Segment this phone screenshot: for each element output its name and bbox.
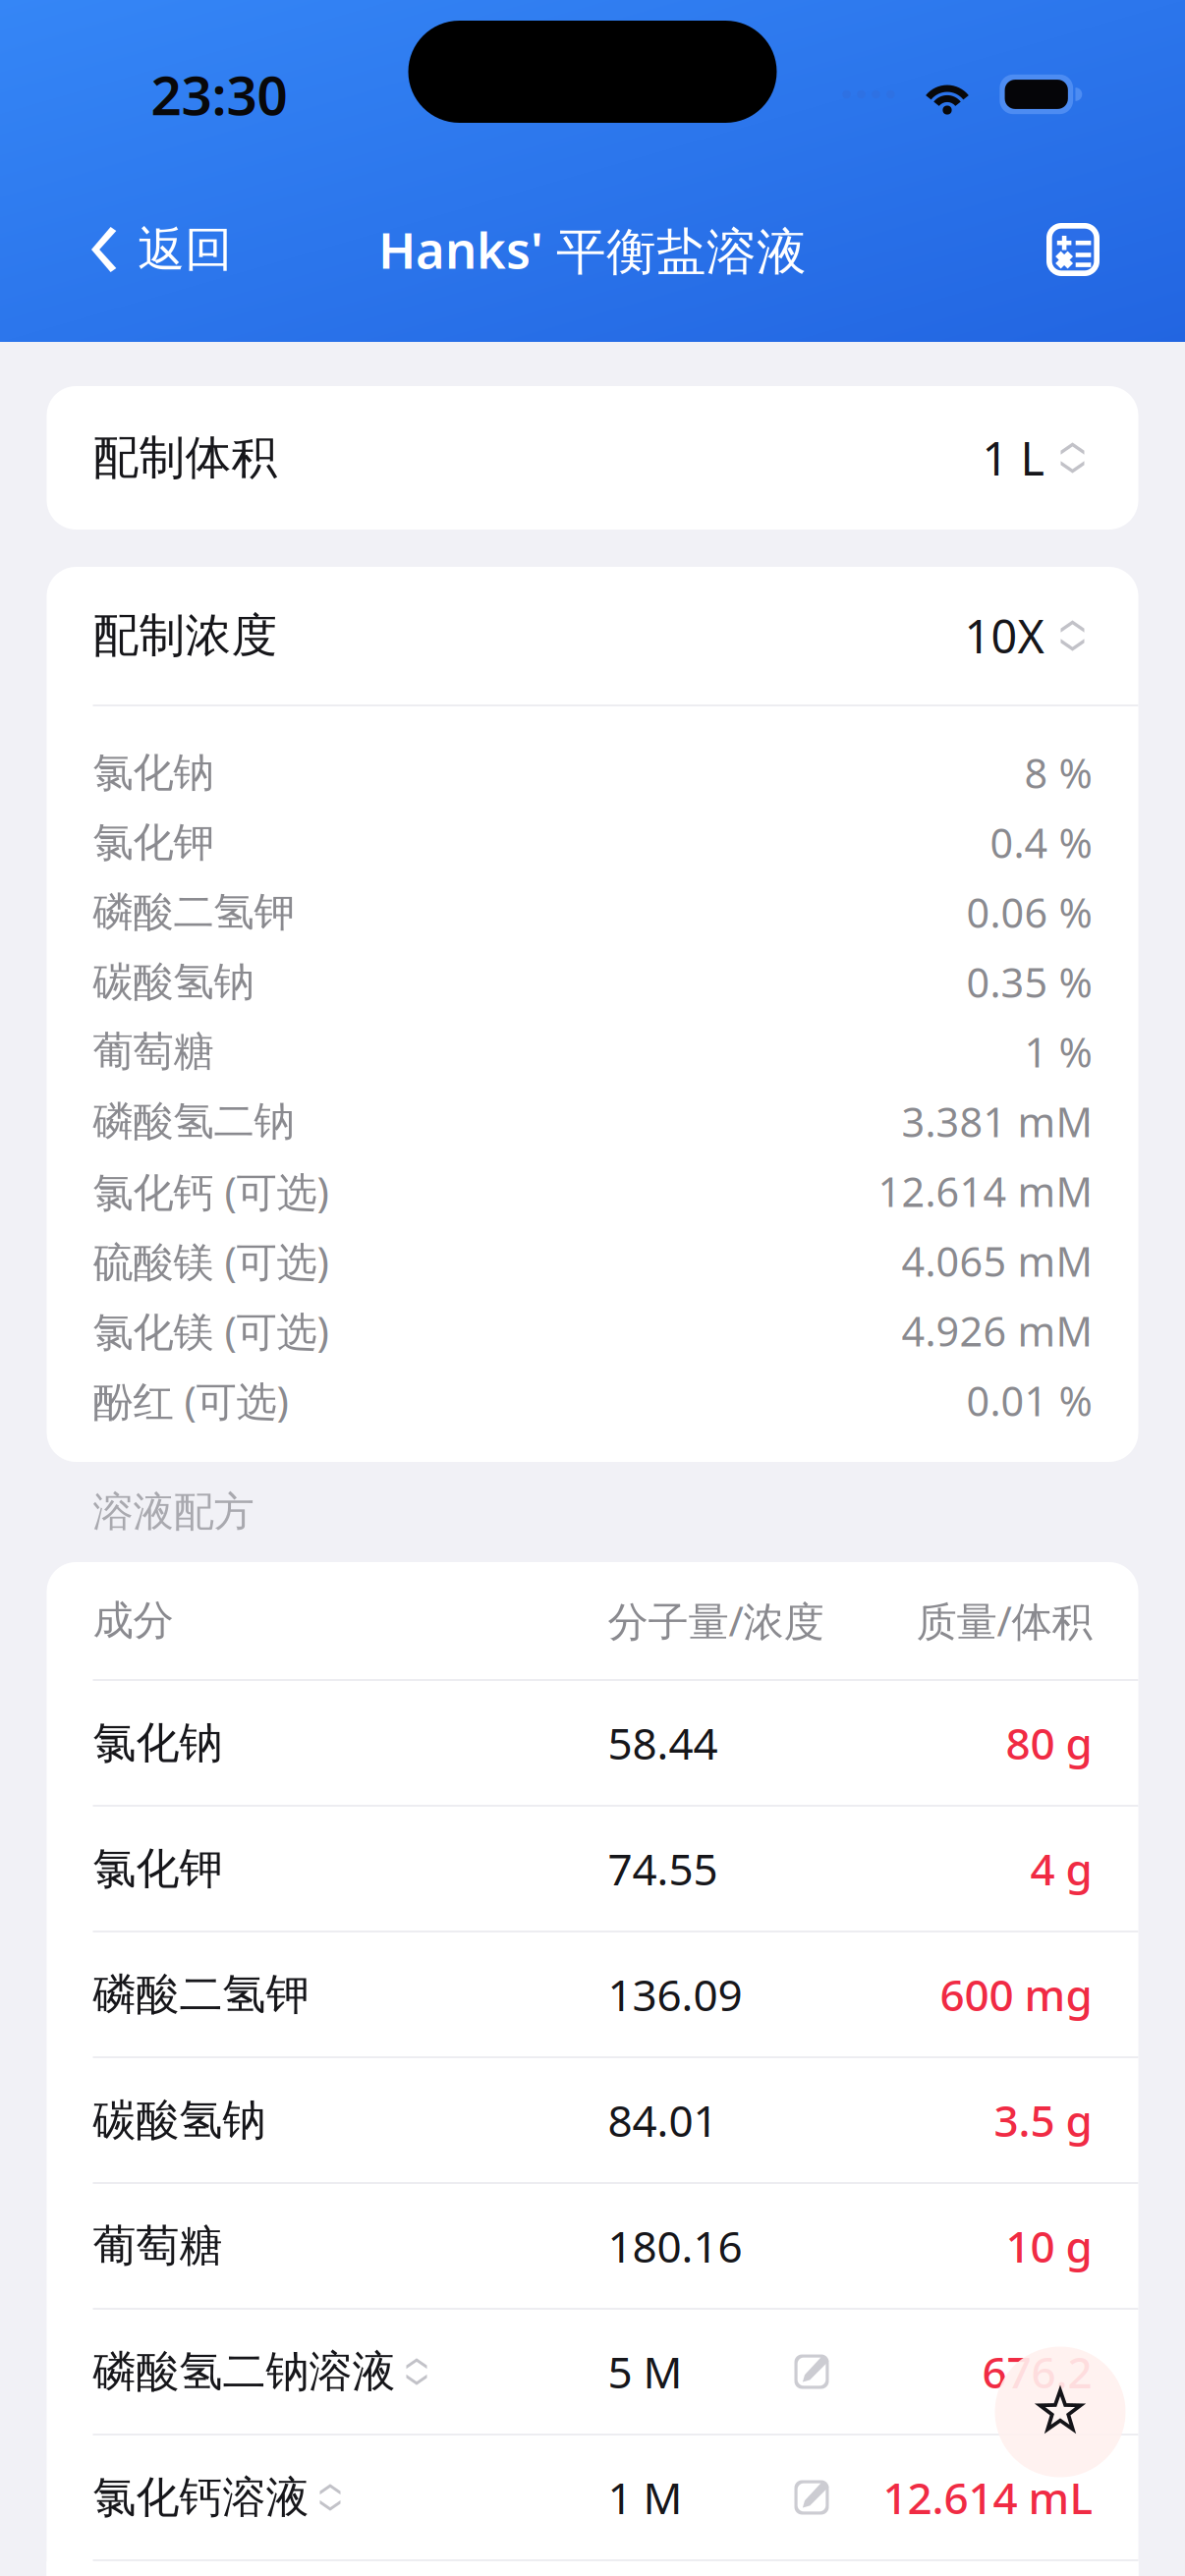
staticText: 136.09: [608, 1966, 742, 2023]
staticText: 3.5 g: [994, 2091, 1092, 2149]
button[interactable]: 配制浓度: [47, 567, 1138, 704]
staticText: 质量/体积: [916, 1594, 1092, 1648]
staticText: 0.01 %: [966, 1374, 1092, 1428]
staticText: Hanks' 平衡盐溶液: [378, 216, 807, 283]
staticText: 74.55: [608, 1840, 718, 1897]
staticText: 676.2: [982, 2343, 1092, 2400]
staticText: 4.926 mM: [902, 1304, 1092, 1358]
staticText: 3.381 mM: [902, 1095, 1092, 1148]
staticText: 碳酸氢钠: [93, 957, 254, 1007]
staticText: 成分: [93, 1596, 173, 1646]
staticText: 配制浓度: [93, 607, 278, 664]
staticText: 80 g: [1006, 1714, 1092, 1772]
staticText: 4 g: [1030, 1840, 1092, 1897]
button[interactable]: Favorite: [993, 2345, 1127, 2479]
button[interactable]: Calculator: [1019, 189, 1127, 310]
staticText: 600 mg: [940, 1966, 1092, 2023]
staticText: 氯化钙 (可选): [93, 1164, 329, 1218]
staticText: 硫酸镁 (可选): [93, 1234, 329, 1288]
staticText: 磷酸氢二钠溶液: [93, 2345, 395, 2398]
staticText: 溶液配方: [93, 1487, 254, 1537]
staticText: 180.16: [608, 2217, 742, 2275]
staticText: 10 g: [1006, 2217, 1092, 2275]
staticText: 0.06 %: [966, 885, 1092, 939]
staticText: 葡萄糖: [93, 1027, 214, 1077]
staticText: 配制体积: [93, 430, 278, 486]
staticText: 分子量/浓度: [608, 1594, 824, 1648]
staticText: 返回: [138, 221, 232, 279]
staticText: 氯化钾: [93, 818, 214, 867]
staticText: 4.065 mM: [902, 1234, 1092, 1288]
staticText: 葡萄糖: [93, 2219, 223, 2272]
button[interactable]: 返回: [0, 189, 256, 310]
staticText: 氯化钙溶液: [93, 2471, 309, 2524]
staticText: 12.614 mM: [878, 1164, 1092, 1218]
staticText: 氯化镁 (可选): [93, 1304, 329, 1358]
staticText: 10X: [964, 605, 1044, 666]
staticText: 氯化钠: [93, 1716, 223, 1769]
staticText: 磷酸二氢钾: [93, 887, 294, 937]
staticText: 0.35 %: [966, 955, 1092, 1009]
staticText: 磷酸氢二钠: [93, 1097, 294, 1146]
staticText: 0.4 %: [990, 816, 1092, 869]
staticText: 58.44: [608, 1714, 718, 1772]
staticText: 1 L: [982, 427, 1044, 488]
staticText: 氯化钾: [93, 1842, 223, 1895]
staticText: 12.614 mL: [883, 2469, 1092, 2526]
button[interactable]: 配制体积: [47, 386, 1138, 530]
staticText: 酚红 (可选): [93, 1374, 288, 1428]
staticText: 23:30: [151, 59, 287, 130]
staticText: 8 %: [1024, 746, 1092, 800]
staticText: 碳酸氢钠: [93, 2094, 266, 2147]
staticText: 磷酸二氢钾: [93, 1968, 309, 2021]
staticText: 1 %: [1024, 1025, 1092, 1079]
staticText: 1 M: [608, 2469, 682, 2526]
staticText: 氯化钠: [93, 748, 214, 798]
staticText: 84.01: [608, 2091, 718, 2149]
staticText: 5 M: [608, 2343, 682, 2400]
